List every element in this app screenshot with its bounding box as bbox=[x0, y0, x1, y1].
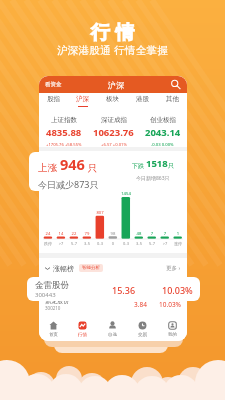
staticText: 1518 bbox=[146, 157, 168, 170]
staticText: 3.84 bbox=[117, 300, 147, 309]
staticText: 5-7 bbox=[64, 241, 84, 246]
staticText: 7 bbox=[142, 231, 162, 237]
staticText: 行情 bbox=[88, 21, 137, 45]
staticText: 300443 bbox=[35, 291, 56, 299]
staticText: 946 bbox=[60, 154, 85, 174]
staticText: 10.03% bbox=[162, 284, 193, 296]
staticText: 300210 bbox=[45, 305, 61, 311]
staticText: 1 bbox=[168, 231, 187, 237]
staticText: 15.36 bbox=[112, 284, 136, 296]
staticText: 其他 bbox=[166, 95, 179, 103]
staticText: 更多 › bbox=[166, 264, 181, 272]
staticText: 行情 bbox=[78, 332, 87, 338]
button[interactable]: Search bbox=[170, 79, 181, 90]
staticText: 沪深 bbox=[76, 95, 89, 103]
button[interactable]: 涨幅榜 bbox=[45, 261, 181, 275]
staticText: 4835.88 bbox=[46, 126, 82, 139]
staticText: 鼎龙股份 bbox=[45, 297, 69, 305]
staticText: 今日新增863只 bbox=[136, 175, 170, 182]
button[interactable]: 行情 bbox=[68, 317, 97, 341]
button[interactable]: 金雷股份 bbox=[45, 277, 181, 295]
staticText: 0-3 bbox=[90, 241, 110, 246]
button[interactable]: 其他 bbox=[157, 95, 187, 111]
staticText: 0 bbox=[103, 241, 123, 246]
staticText: 只 bbox=[85, 161, 97, 174]
button[interactable]: 金雷股份 bbox=[27, 277, 200, 301]
staticText: +1705.76 +58.55% bbox=[46, 142, 82, 148]
staticText: 智能分析 bbox=[82, 265, 100, 271]
staticText: 2043.14 bbox=[145, 126, 181, 139]
staticText: 15.36 bbox=[117, 282, 147, 291]
staticText: 0-3 bbox=[116, 241, 136, 246]
staticText: 上证指数 bbox=[51, 116, 77, 124]
staticText: 只 bbox=[168, 162, 174, 170]
button[interactable]: 交易 bbox=[127, 317, 157, 341]
staticText: 交易 bbox=[138, 332, 147, 338]
staticText: 3-5 bbox=[77, 241, 97, 246]
button[interactable]: 鼎龙股份 bbox=[45, 295, 181, 313]
staticText: 807 bbox=[90, 210, 110, 216]
staticText: 7 bbox=[155, 231, 175, 237]
staticText: +6.57 +0.01% bbox=[101, 142, 127, 148]
staticText: 涨幅榜 bbox=[53, 264, 74, 273]
staticText: 5-7 bbox=[142, 241, 162, 246]
staticText: 1454 bbox=[116, 191, 136, 197]
staticText: 上涨 bbox=[38, 161, 60, 174]
staticText: 98 bbox=[103, 231, 123, 237]
staticText: 跌停 bbox=[39, 241, 58, 246]
button[interactable]: 我的 bbox=[157, 317, 187, 341]
staticText: -0.03 0.00% bbox=[151, 142, 174, 148]
staticText: 股指 bbox=[47, 95, 60, 103]
staticText: 涨停 bbox=[168, 241, 187, 246]
staticText: 14 bbox=[51, 231, 71, 237]
button[interactable]: 港股 bbox=[127, 95, 157, 111]
staticText: 深证成指 bbox=[101, 116, 127, 124]
staticText: 10.03% bbox=[155, 282, 181, 291]
staticText: 22 bbox=[64, 231, 84, 237]
staticText: 300443 bbox=[45, 287, 61, 293]
staticText: 港股 bbox=[136, 95, 149, 103]
button[interactable]: 沪深 bbox=[68, 95, 97, 111]
button[interactable]: 板块 bbox=[97, 95, 127, 111]
staticText: 10623.76 bbox=[93, 126, 134, 139]
staticText: 沪深 bbox=[108, 80, 124, 90]
button[interactable]: 首页 bbox=[39, 317, 68, 341]
staticText: 金雷股份 bbox=[35, 280, 69, 291]
staticText: 沪深港股通 行情全掌握 bbox=[57, 43, 169, 57]
staticText: 首页 bbox=[49, 332, 58, 338]
staticText: 79 bbox=[77, 231, 97, 237]
staticText: >7 bbox=[155, 241, 175, 246]
staticText: 48 bbox=[129, 231, 149, 237]
button[interactable]: 上涨 bbox=[29, 152, 124, 191]
staticText: 我的 bbox=[168, 332, 177, 338]
staticText: 10.03% bbox=[155, 300, 181, 309]
staticText: 下跌 bbox=[132, 162, 146, 170]
staticText: 24 bbox=[39, 231, 58, 237]
staticText: 3-5 bbox=[129, 241, 149, 246]
button[interactable]: 自选 bbox=[97, 317, 127, 341]
staticText: 金雷股份 bbox=[45, 279, 69, 287]
staticText: 自选 bbox=[108, 332, 117, 338]
staticText: 板块 bbox=[106, 95, 119, 103]
staticText: 创业板指 bbox=[150, 116, 176, 124]
staticText: 看资金 bbox=[45, 81, 62, 88]
staticText: >7 bbox=[51, 241, 71, 246]
staticText: 今日减少873只 bbox=[38, 178, 99, 190]
button[interactable]: 股指 bbox=[39, 95, 68, 111]
